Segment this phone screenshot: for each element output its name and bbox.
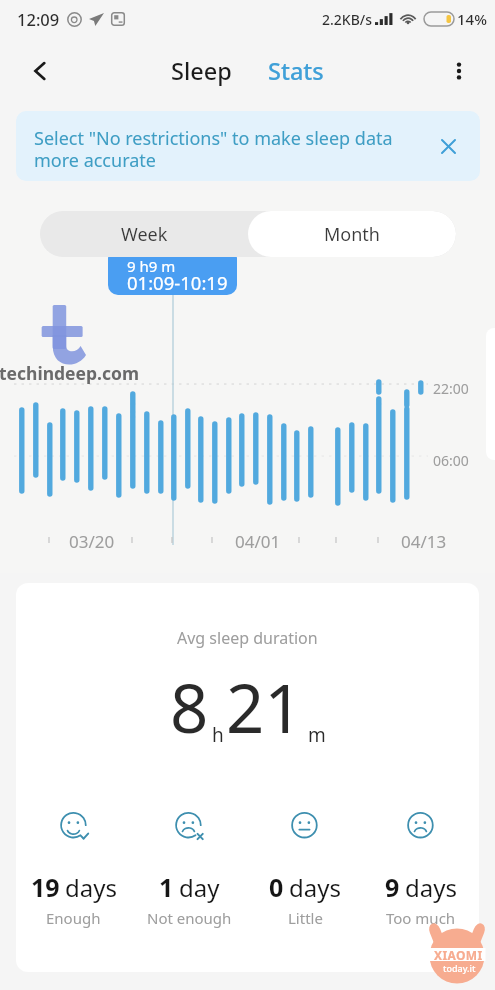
staticText: 12:09 bbox=[17, 8, 60, 30]
staticText: 9 bbox=[385, 870, 400, 904]
staticText: Stats bbox=[268, 55, 324, 87]
staticText: day bbox=[179, 871, 220, 904]
staticText: Select "No restrictions" to make sleep d… bbox=[34, 126, 393, 173]
staticText: 03/20 bbox=[69, 530, 115, 553]
staticText: 04/13 bbox=[401, 530, 447, 553]
button[interactable]: Sleep bbox=[165, 49, 238, 93]
button[interactable]: Back bbox=[20, 51, 60, 91]
button[interactable]: 19 bbox=[16, 812, 131, 928]
staticText: Month bbox=[324, 222, 380, 247]
button[interactable]: Dismiss bbox=[428, 126, 468, 166]
staticText: 22:00 bbox=[433, 379, 469, 398]
staticText: days bbox=[405, 871, 457, 904]
staticText: 14% bbox=[457, 9, 487, 29]
staticText: 0 bbox=[269, 870, 284, 904]
staticText: XIAOMI bbox=[434, 947, 483, 963]
staticText: m bbox=[308, 722, 326, 748]
staticText: 06:00 bbox=[433, 451, 469, 470]
button[interactable]: Week bbox=[40, 211, 248, 257]
staticText: 21 bbox=[226, 661, 303, 752]
staticText: days bbox=[289, 871, 341, 904]
staticText: 2.2KB/s bbox=[322, 10, 373, 29]
button[interactable]: More options bbox=[439, 51, 479, 91]
staticText: 8 bbox=[170, 661, 209, 752]
button[interactable]: 0 bbox=[247, 812, 363, 928]
staticText: Sleep bbox=[171, 55, 232, 87]
staticText: 01:09-10:19 bbox=[127, 270, 228, 295]
staticText: 19 bbox=[31, 870, 60, 904]
button[interactable]: Stats bbox=[262, 49, 330, 93]
staticText: days bbox=[65, 871, 117, 904]
staticText: today.it bbox=[443, 962, 476, 974]
button[interactable]: Month bbox=[248, 211, 456, 257]
staticText: h bbox=[212, 722, 224, 748]
staticText: 04/01 bbox=[235, 530, 281, 553]
staticText: Not enough bbox=[147, 908, 232, 928]
button[interactable]: 1 bbox=[131, 812, 247, 928]
button[interactable]: 9 bbox=[363, 812, 479, 928]
staticText: Enough bbox=[46, 908, 101, 928]
staticText: Avg sleep duration bbox=[177, 627, 318, 649]
button[interactable]: Select "No restrictions" to make sleep d… bbox=[16, 111, 480, 181]
staticText: Little bbox=[288, 908, 323, 928]
staticText: techindeep.com bbox=[0, 361, 140, 385]
staticText: 1 bbox=[159, 870, 174, 904]
staticText: Too much bbox=[386, 908, 456, 928]
staticText: Week bbox=[121, 222, 168, 247]
staticText: 9 h9 m bbox=[127, 256, 176, 276]
